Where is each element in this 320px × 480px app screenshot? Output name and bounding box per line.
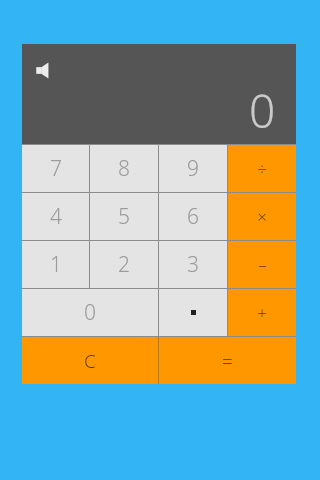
button[interactable]: 8 — [90, 145, 158, 192]
staticText: ÷ — [257, 157, 267, 180]
staticText: – — [258, 253, 267, 276]
button[interactable]: + — [228, 289, 296, 336]
staticText: 2 — [118, 250, 130, 279]
button[interactable]: C — [22, 337, 158, 384]
staticText: 8 — [118, 154, 130, 183]
button[interactable]: 6 — [159, 193, 227, 240]
staticText: 0 — [249, 79, 276, 142]
button[interactable]: 7 — [22, 145, 89, 192]
button[interactable]: Decimal point — [159, 289, 227, 336]
staticText: 0 — [84, 298, 96, 327]
staticText: 5 — [118, 202, 130, 231]
button[interactable]: 3 — [159, 241, 227, 288]
staticText: 7 — [50, 154, 62, 183]
staticText: 9 — [187, 154, 199, 183]
staticText: 3 — [187, 250, 199, 279]
button[interactable]: 5 — [90, 193, 158, 240]
staticText: = — [222, 348, 233, 374]
staticText: 4 — [50, 202, 62, 231]
button[interactable]: Sound — [35, 60, 56, 81]
button[interactable]: – — [228, 241, 296, 288]
staticText: + — [257, 301, 267, 324]
staticText: 1 — [50, 250, 62, 279]
staticText: C — [84, 348, 96, 374]
button[interactable]: × — [228, 193, 296, 240]
button[interactable]: 2 — [90, 241, 158, 288]
staticText: 6 — [187, 202, 199, 231]
staticText: × — [257, 205, 267, 228]
button[interactable]: 1 — [22, 241, 89, 288]
button[interactable]: ÷ — [228, 145, 296, 192]
button[interactable]: 0 — [22, 289, 158, 336]
button[interactable]: = — [159, 337, 296, 384]
button[interactable]: 4 — [22, 193, 89, 240]
button[interactable]: 9 — [159, 145, 227, 192]
